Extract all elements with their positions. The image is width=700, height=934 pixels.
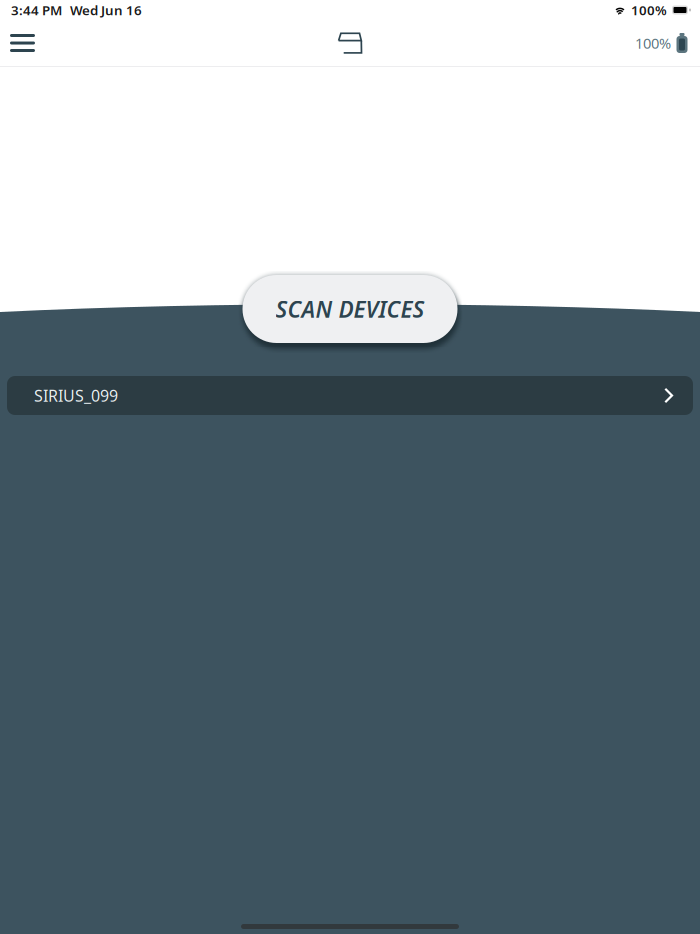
staticText: SCAN DEVICES xyxy=(275,294,424,324)
button[interactable]: Menu xyxy=(0,20,45,66)
staticText: Wed Jun 16 xyxy=(70,1,142,19)
staticText: SIRIUS_099 xyxy=(34,385,118,406)
button[interactable]: SCAN DEVICES xyxy=(242,275,457,343)
button[interactable]: SIRIUS_099 xyxy=(7,376,693,415)
button[interactable]: Battery level xyxy=(635,20,700,66)
staticText: 3:44 PM xyxy=(11,1,62,19)
staticText: 100% xyxy=(631,1,667,19)
staticText: 100% xyxy=(635,33,671,53)
